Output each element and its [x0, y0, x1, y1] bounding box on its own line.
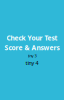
staticText: tiny 3	[27, 53, 36, 58]
staticText: Score & Answers	[4, 43, 59, 52]
staticText: Check Your Test	[6, 33, 57, 42]
staticText: tiny 4	[25, 59, 38, 67]
